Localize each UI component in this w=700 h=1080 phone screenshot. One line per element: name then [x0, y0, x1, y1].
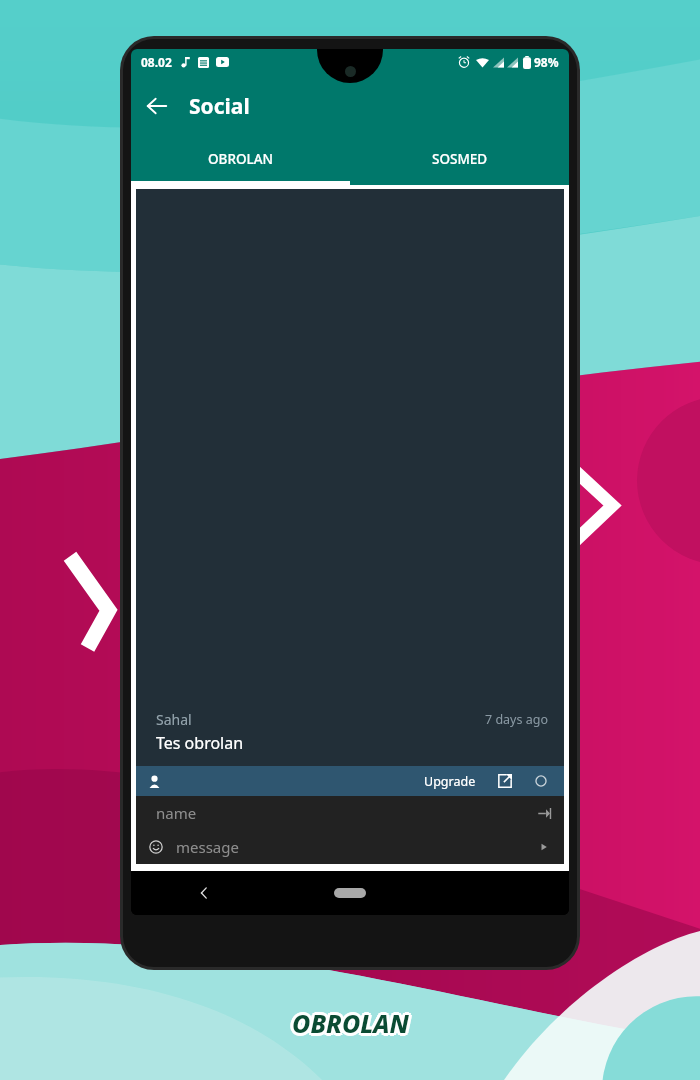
button[interactable]: Home [277, 871, 423, 915]
button[interactable]: SOSMED [350, 137, 569, 181]
staticText: 08.02 [141, 54, 172, 70]
button[interactable]: Login [532, 801, 556, 825]
button[interactable]: Emoji [144, 835, 168, 859]
staticText: name [156, 803, 197, 823]
staticText: 7 days ago [485, 711, 548, 728]
button[interactable]: name [136, 796, 564, 830]
button[interactable]: Emoji [136, 830, 564, 864]
button[interactable]: OBROLAN [131, 137, 350, 181]
staticText: OBROLAN [292, 1003, 409, 1037]
button[interactable]: Sahal [136, 710, 564, 766]
staticText: Sahal [156, 710, 192, 729]
staticText: OBROLAN [294, 1008, 411, 1042]
staticText: OBROLAN [294, 1004, 411, 1038]
staticText: SOSMED [432, 150, 488, 168]
staticText: OBROLAN [292, 1009, 409, 1043]
button[interactable]: Upgrade [136, 766, 564, 796]
staticText: OBROLAN [290, 1008, 407, 1042]
button[interactable]: Send [532, 835, 556, 859]
button[interactable]: Open external [494, 770, 516, 792]
staticText: OBROLAN [208, 150, 274, 168]
staticText: Social [189, 92, 250, 121]
button[interactable]: Back [131, 871, 277, 915]
staticText: message [176, 837, 239, 857]
staticText: Tes obrolan [156, 732, 244, 754]
button[interactable]: Back [131, 80, 183, 132]
button[interactable]: Status [530, 770, 552, 792]
staticText: Upgrade [424, 773, 476, 790]
staticText: OBROLAN [289, 1006, 406, 1040]
staticText: 98% [534, 54, 559, 70]
staticText: OBROLAN [292, 1006, 409, 1040]
staticText: OBROLAN [295, 1006, 412, 1040]
staticText: OBROLAN [290, 1004, 407, 1038]
